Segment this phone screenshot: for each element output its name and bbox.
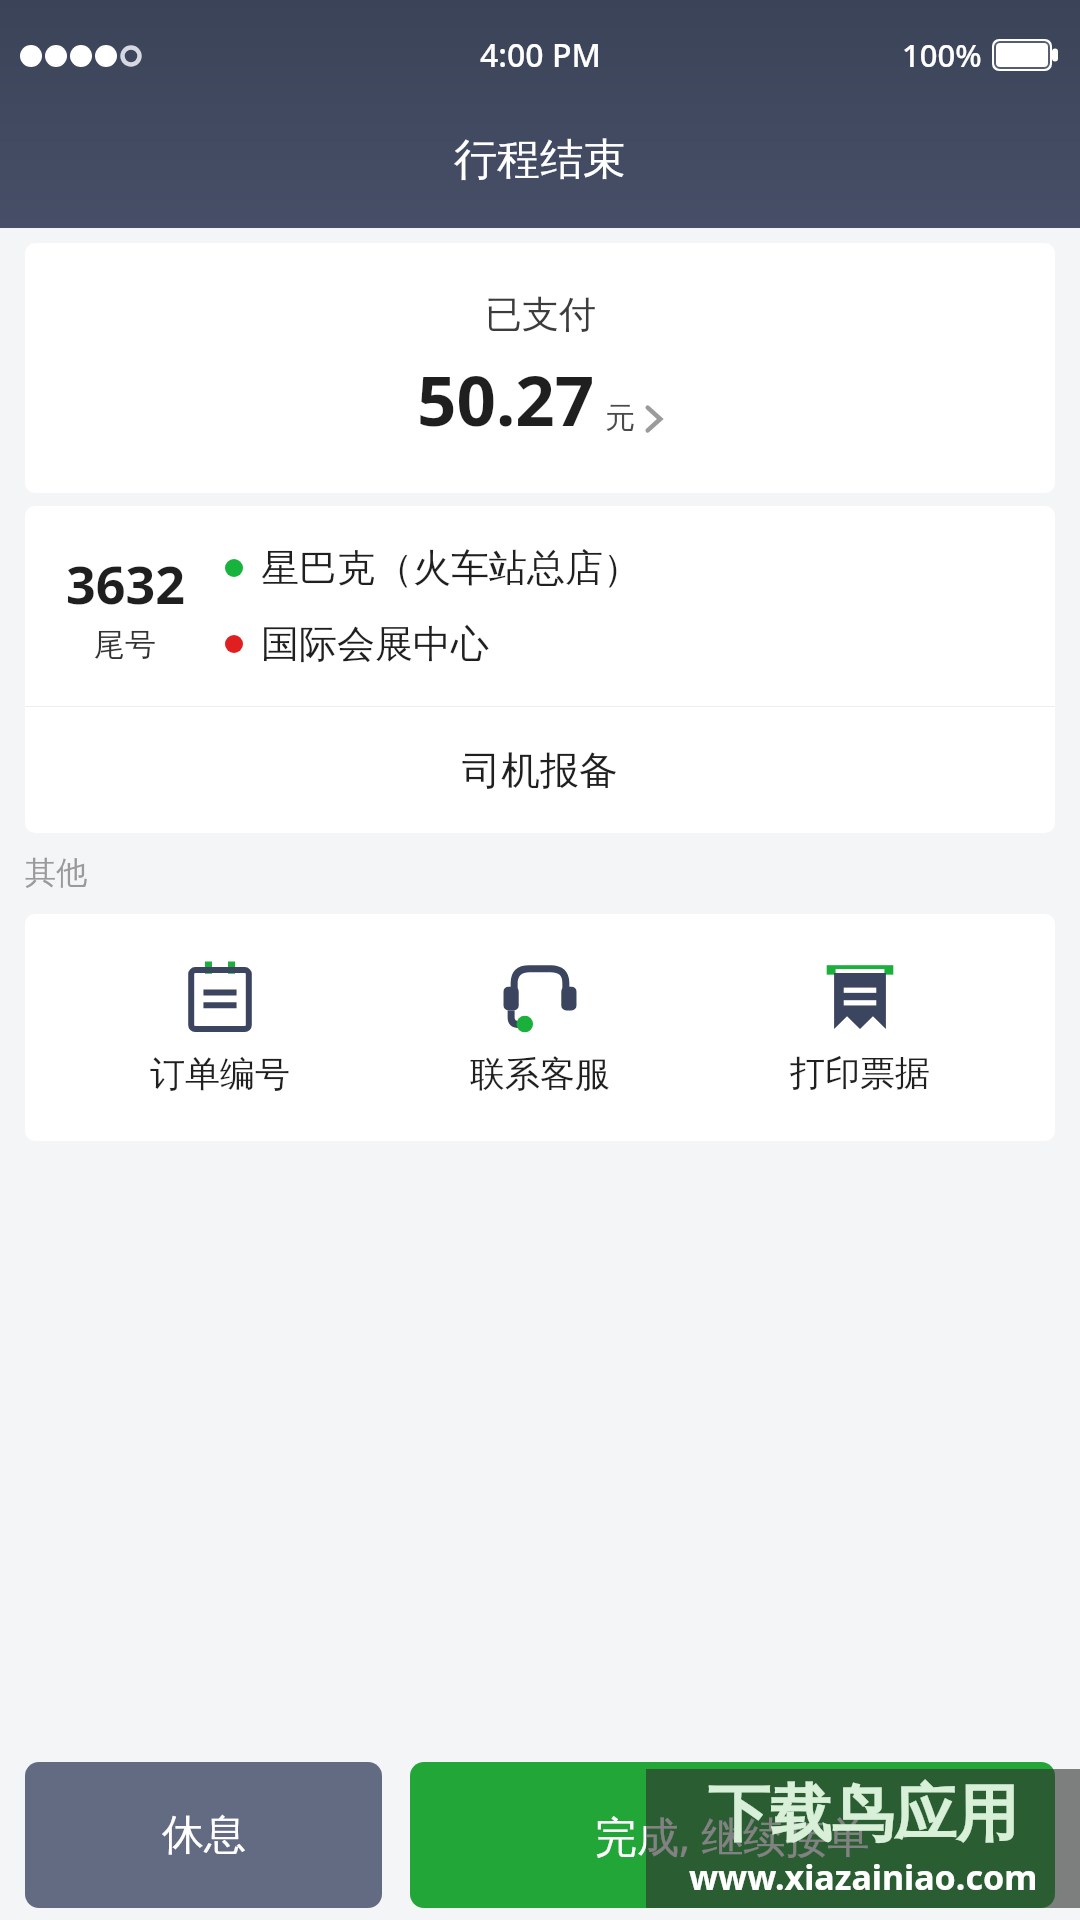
button[interactable]: 司机报备: [25, 707, 1055, 833]
staticText: 50.27: [417, 352, 595, 446]
staticText: 4:00 PM: [480, 33, 601, 77]
staticText: 下载鸟应用: [708, 1775, 1018, 1853]
staticText: 行程结束: [454, 133, 626, 187]
button[interactable]: 订单编号: [95, 950, 345, 1106]
staticText: 尾号: [94, 625, 156, 664]
staticText: www.xiazainiao.com: [689, 1854, 1038, 1900]
other: 订单编号: [184, 960, 256, 1032]
staticText: 司机报备: [462, 746, 618, 795]
button[interactable]: 打印票据: [735, 951, 985, 1105]
staticText: 联系客服: [470, 1052, 610, 1096]
button[interactable]: 联系客服: [415, 950, 665, 1106]
staticText: 国际会展中心: [261, 620, 489, 668]
staticText: 3632: [66, 548, 185, 619]
button[interactable]: 已支付: [25, 243, 1055, 493]
button[interactable]: 休息: [25, 1762, 382, 1908]
staticText: 订单编号: [150, 1052, 290, 1096]
other: 打印票据: [823, 961, 897, 1031]
button[interactable]: 完成, 继续接单: [410, 1762, 1055, 1908]
staticText: 完成, 继续接单: [595, 1807, 870, 1864]
staticText: 打印票据: [790, 1051, 930, 1095]
staticText: 休息: [162, 1809, 246, 1862]
staticText: 100%: [902, 34, 982, 76]
other: 联系客服: [502, 960, 578, 1032]
staticText: 已支付: [485, 291, 596, 338]
staticText: 元: [605, 399, 635, 437]
button[interactable]: 3632: [25, 506, 1055, 706]
staticText: 其他: [25, 853, 87, 892]
staticText: 星巴克（火车站总店）: [261, 544, 641, 592]
